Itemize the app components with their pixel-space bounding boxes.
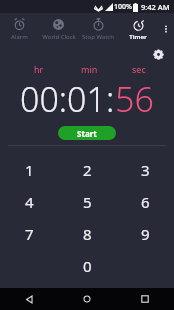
button[interactable]: Start (58, 126, 116, 140)
button[interactable]: 4 (0, 186, 58, 218)
staticText: 7 (25, 224, 34, 244)
staticText: 00:01: (20, 76, 115, 122)
staticText: Stop Watch (82, 33, 114, 41)
staticText: 6 (141, 192, 150, 212)
button[interactable]: Timer (118, 13, 158, 45)
staticText: World Clock (42, 33, 76, 41)
staticText: Start (77, 128, 97, 139)
staticText: sec (132, 63, 146, 75)
staticText: 56 (115, 76, 154, 122)
staticText: 1 (25, 160, 34, 180)
staticText: 100% (114, 2, 132, 12)
staticText: 5 (83, 192, 92, 212)
staticText: 3 (141, 160, 150, 180)
button[interactable]: More options (158, 13, 174, 45)
button[interactable]: Alarm (0, 13, 39, 45)
staticText: 9:42 AM (141, 2, 170, 12)
button[interactable]: 3 (116, 154, 174, 186)
staticText: 8 (83, 224, 92, 244)
button[interactable]: 9 (116, 218, 174, 250)
button[interactable]: 7 (0, 218, 58, 250)
button[interactable]: Settings (150, 46, 166, 62)
button[interactable]: 6 (116, 186, 174, 218)
staticText: 4 (25, 192, 34, 212)
button[interactable]: 2 (58, 154, 116, 186)
button[interactable]: Back (0, 288, 58, 310)
button[interactable]: World Clock (39, 13, 78, 45)
button[interactable]: Stop Watch (78, 13, 118, 45)
staticText: hr (34, 63, 44, 75)
button[interactable]: 8 (58, 218, 116, 250)
button[interactable]: Home (58, 288, 116, 310)
staticText: min (81, 63, 98, 75)
button[interactable]: 1 (0, 154, 58, 186)
staticText: 0 (83, 256, 92, 276)
staticText: Alarm (11, 33, 28, 41)
button[interactable]: 0 (58, 250, 116, 282)
staticText: 2 (83, 160, 92, 180)
staticText: Timer (129, 33, 147, 41)
button[interactable]: Recent apps (116, 288, 174, 310)
button[interactable]: 5 (58, 186, 116, 218)
staticText: 9 (141, 224, 150, 244)
